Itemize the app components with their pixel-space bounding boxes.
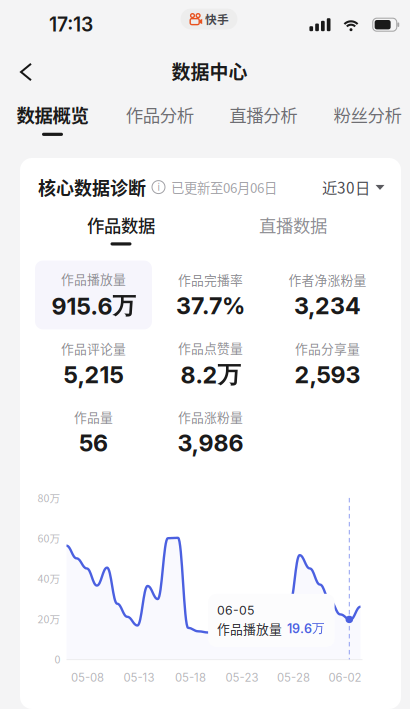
staticText: 2,593 bbox=[294, 360, 360, 389]
button[interactable]: 作品点赞量 bbox=[152, 329, 269, 398]
staticText: 06-05 bbox=[217, 603, 254, 618]
button[interactable]: 作品数据 bbox=[78, 210, 164, 247]
staticText: 56 bbox=[79, 429, 108, 457]
staticText: 直播分析 bbox=[229, 102, 297, 127]
button[interactable]: 作品分享量 bbox=[269, 330, 386, 398]
staticText: 作品分享量 bbox=[295, 339, 360, 357]
staticText: 3,234 bbox=[294, 292, 361, 320]
staticText: 近30日 bbox=[322, 176, 370, 198]
staticText: 作品量 bbox=[74, 407, 113, 426]
staticText: 数据中心 bbox=[171, 57, 247, 85]
staticText: 粉丝分析 bbox=[333, 102, 401, 127]
staticText: 数据概览 bbox=[16, 101, 88, 128]
button[interactable]: 作品涨粉量 bbox=[152, 398, 269, 466]
button[interactable]: 直播数据 bbox=[250, 210, 336, 247]
staticText: 5,215 bbox=[63, 360, 123, 389]
staticText: 作者净涨粉量 bbox=[288, 270, 366, 289]
staticText: 作品播放量 bbox=[217, 619, 282, 638]
staticText: 37.7% bbox=[176, 292, 245, 320]
staticText: 05-13 bbox=[123, 671, 154, 684]
staticText: 作品完播率 bbox=[178, 270, 243, 289]
staticText: 直播数据 bbox=[259, 212, 327, 237]
staticText: 05-18 bbox=[175, 671, 206, 684]
staticText: 17:13 bbox=[49, 13, 93, 36]
button[interactable]: 作品量 bbox=[35, 398, 152, 466]
staticText: 05-23 bbox=[225, 671, 258, 684]
staticText: 0 bbox=[54, 651, 60, 666]
button[interactable]: 数据概览 bbox=[12, 98, 93, 138]
staticText: 05-08 bbox=[71, 671, 104, 684]
staticText: 已更新至06月06日 bbox=[171, 177, 277, 197]
button[interactable]: 直播分析 bbox=[226, 98, 300, 138]
staticText: 20万 bbox=[37, 611, 60, 626]
staticText: 作品分析 bbox=[126, 102, 194, 127]
staticText: 作品点赞量 bbox=[178, 338, 243, 357]
staticText: 快手 bbox=[205, 10, 229, 27]
staticText: 8.2万 bbox=[180, 360, 240, 389]
button[interactable]: 作者净涨粉量 bbox=[269, 261, 386, 329]
staticText: 核心数据诊断 bbox=[38, 174, 146, 200]
button[interactable]: 近30日 bbox=[322, 172, 385, 202]
button[interactable]: 作品分析 bbox=[123, 98, 197, 138]
staticText: 40万 bbox=[37, 570, 60, 586]
staticText: 作品播放量 bbox=[61, 269, 126, 288]
staticText: 60万 bbox=[37, 530, 60, 546]
staticText: 19.6万 bbox=[287, 620, 325, 636]
staticText: 06-02 bbox=[328, 671, 361, 684]
staticText: 作品评论量 bbox=[61, 339, 126, 357]
staticText: 3,986 bbox=[177, 429, 243, 457]
staticText: 915.6万 bbox=[51, 291, 135, 320]
button[interactable]: 作品播放量 bbox=[35, 260, 152, 329]
staticText: 作品数据 bbox=[87, 212, 155, 237]
button[interactable]: 作品完播率 bbox=[152, 261, 269, 329]
button[interactable]: 作品评论量 bbox=[35, 330, 152, 398]
staticText: i bbox=[157, 181, 159, 193]
staticText: 作品涨粉量 bbox=[178, 407, 243, 426]
button[interactable]: 粉丝分析 bbox=[330, 98, 405, 138]
staticText: 05-28 bbox=[277, 671, 310, 684]
button[interactable]: Back bbox=[0, 49, 49, 90]
staticText: 80万 bbox=[37, 490, 60, 505]
